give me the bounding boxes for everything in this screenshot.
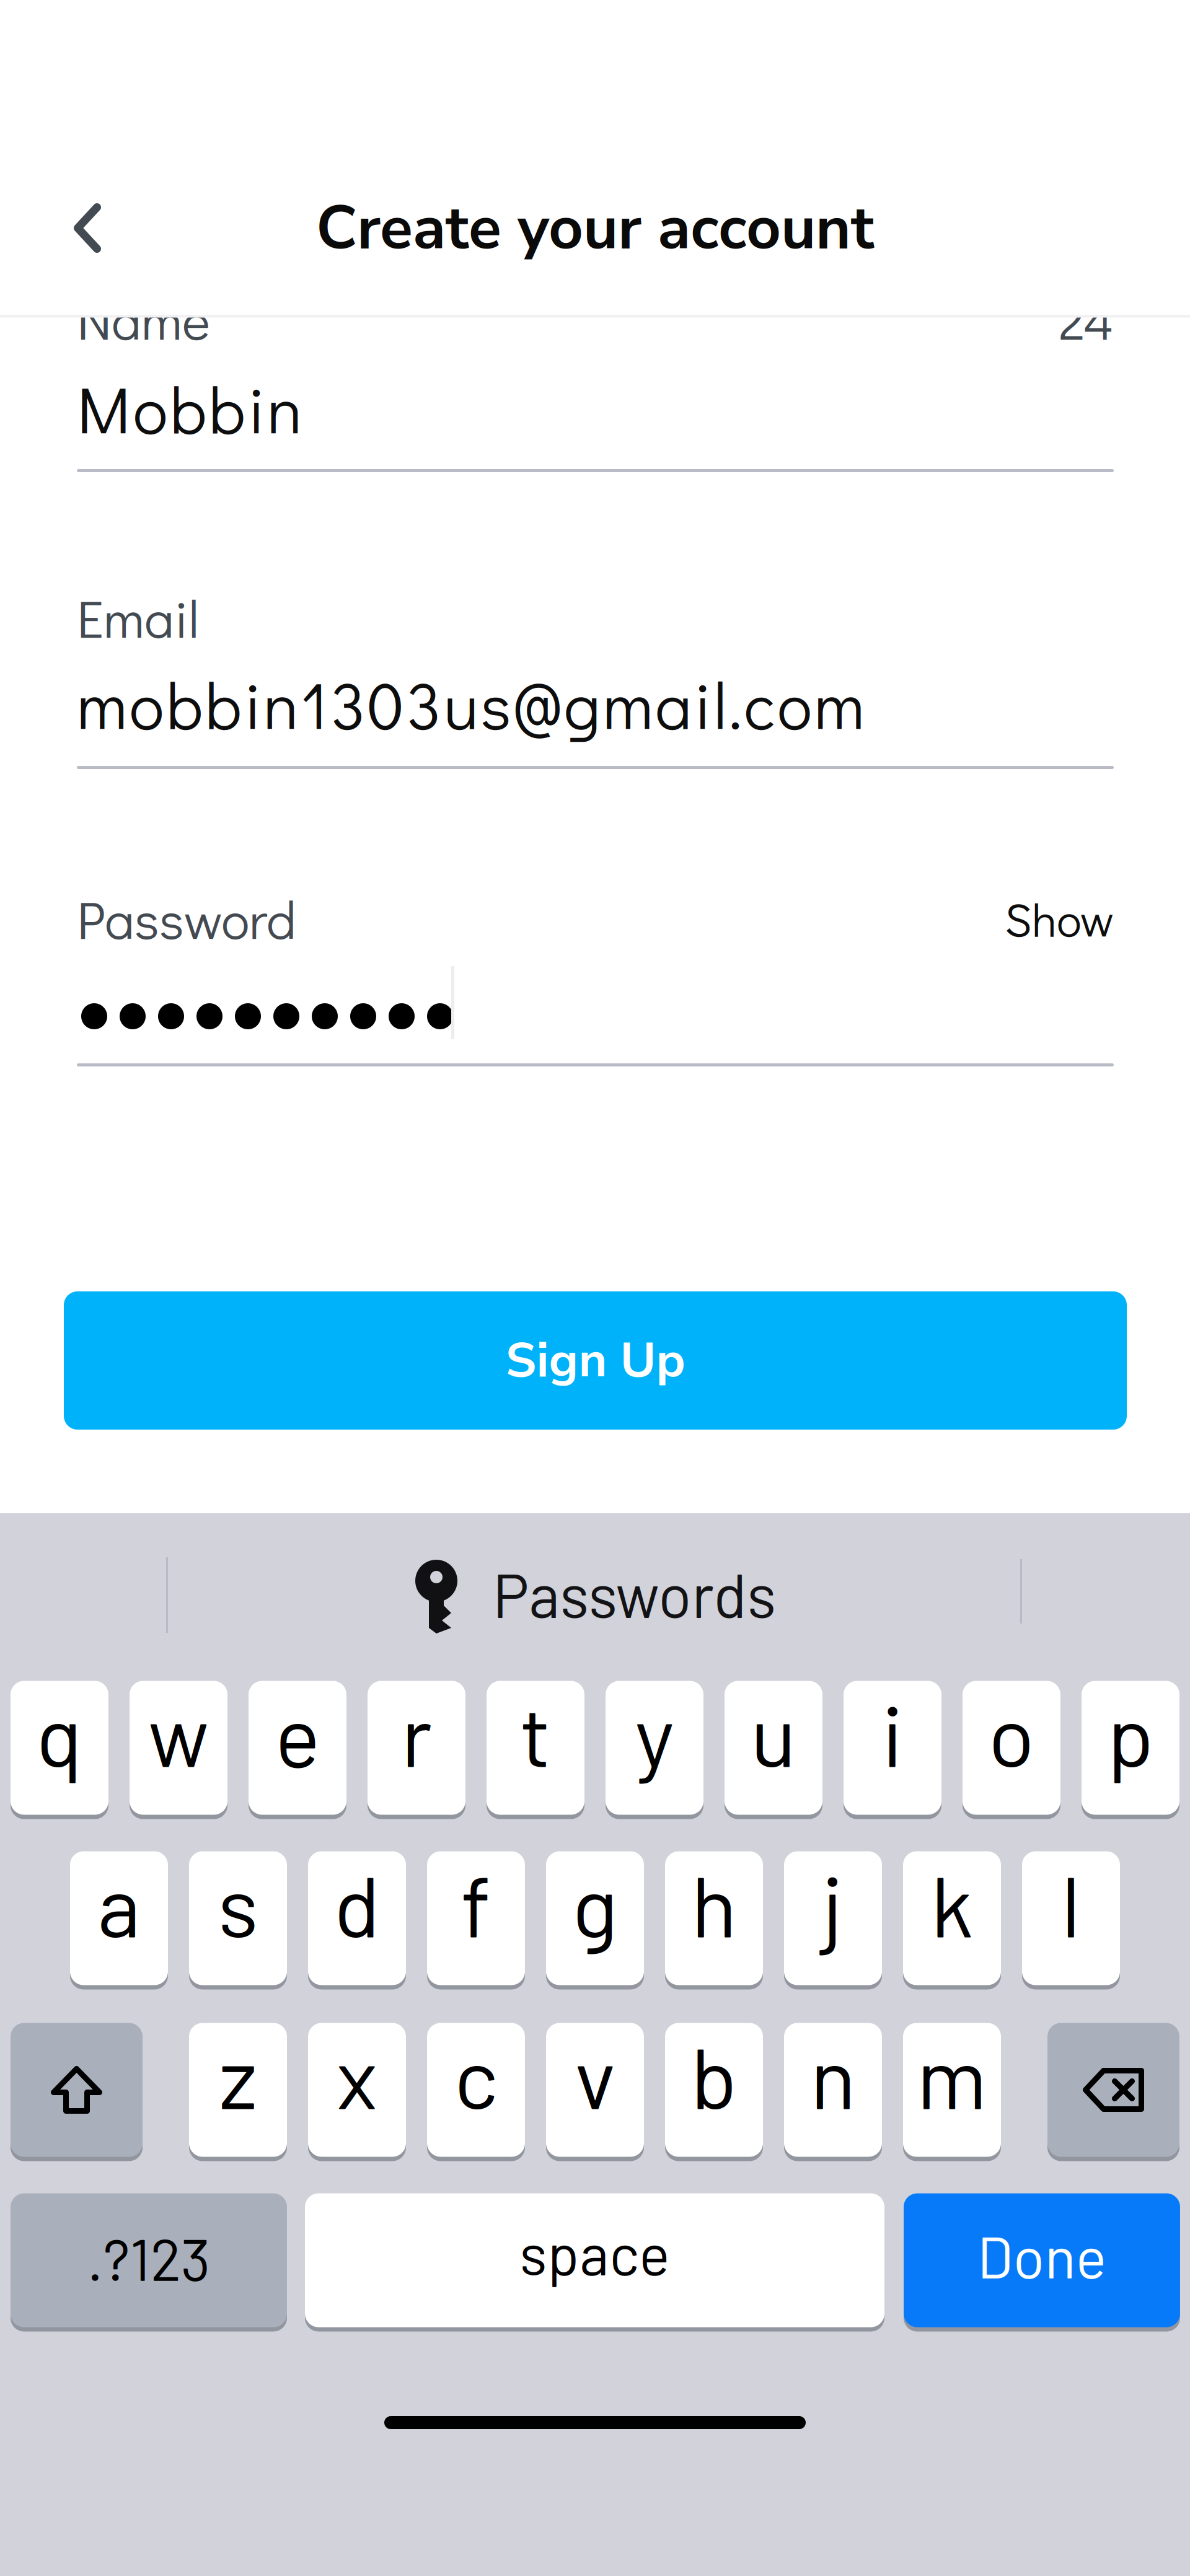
staticText: u [751,1682,796,1784]
staticText: j [822,1852,844,1954]
button[interactable]: x [308,2021,406,2159]
staticText: e [275,1682,320,1784]
button[interactable]: g [546,1849,644,1987]
button[interactable]: e [249,1679,346,1817]
button[interactable]: p [1082,1679,1179,1817]
staticText: w [148,1682,209,1784]
button[interactable]: a [70,1849,168,1987]
button[interactable]: h [665,1849,763,1987]
button[interactable]: Sign Up [64,1291,1127,1430]
staticText: k [931,1852,973,1954]
button[interactable]: n [784,2021,882,2159]
button[interactable]: u [725,1679,822,1817]
button[interactable]: s [189,1849,287,1987]
button[interactable]: i [844,1679,941,1817]
staticText: b [691,2024,737,2126]
staticText: i [882,1682,903,1784]
staticText: z [219,2024,257,2126]
staticText: Passwords [493,1557,776,1630]
button[interactable]: d [308,1849,406,1987]
staticText: Name [77,284,210,354]
button[interactable]: z [189,2021,287,2159]
button[interactable]: .?123 [11,2191,287,2329]
button[interactable]: v [546,2021,644,2159]
staticText: m [917,2024,987,2126]
button[interactable]: o [963,1679,1060,1817]
staticText: r [401,1682,432,1784]
button[interactable]: Show [77,893,1114,944]
staticText: f [461,1852,491,1954]
staticText: a [97,1852,141,1954]
staticText: .?123 [87,2223,210,2292]
button[interactable]: f [427,1849,525,1987]
staticText: Mobbin [77,365,302,451]
button[interactable]: Done [904,2191,1180,2329]
staticText: n [810,2024,856,2126]
button[interactable]: j [784,1849,882,1987]
staticText: Create your account [316,187,874,269]
staticText: x [337,2024,377,2126]
staticText: l [1061,1852,1081,1954]
button[interactable]: l [1022,1849,1120,1987]
staticText: space [519,2218,670,2287]
button[interactable]: Shift [11,2021,143,2159]
staticText: c [454,2024,498,2126]
staticText: o [988,1682,1035,1784]
button[interactable]: Back [51,191,124,265]
staticText: v [575,2024,615,2126]
button[interactable]: Passwords [415,1560,776,1633]
button[interactable]: r [368,1679,465,1817]
button[interactable]: space [305,2191,884,2329]
button[interactable]: Delete [1047,2021,1179,2159]
staticText: p [1107,1682,1154,1784]
button[interactable]: q [11,1679,108,1817]
button[interactable]: t [487,1679,584,1817]
staticText: d [334,1852,380,1954]
button[interactable]: w [130,1679,227,1817]
staticText: t [520,1682,551,1784]
staticText: mobbin1303us@gmail.com [77,661,864,746]
staticText: s [218,1852,258,1954]
staticText: Email [77,583,199,652]
staticText: Password [77,884,296,953]
staticText: Done [977,2221,1107,2290]
staticText: 24 [1059,284,1114,354]
button[interactable]: c [427,2021,525,2159]
staticText: h [691,1852,737,1954]
button[interactable]: k [903,1849,1001,1987]
staticText: g [572,1852,618,1954]
staticText: q [36,1682,83,1784]
button[interactable]: b [665,2021,763,2159]
staticText: Sign Up [505,1327,685,1394]
button[interactable]: m [903,2021,1001,2159]
staticText: Show [1005,888,1114,949]
staticText: y [635,1682,674,1784]
button[interactable]: y [606,1679,703,1817]
